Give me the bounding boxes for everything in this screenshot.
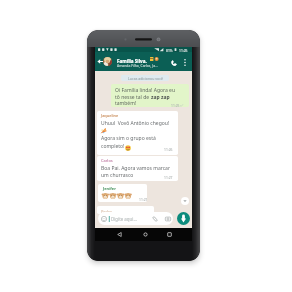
staticText: Jaqueline (101, 113, 119, 118)
staticText: 81% (166, 48, 173, 52)
staticText: um churrasco (101, 172, 134, 179)
button[interactable]: Jenifer (98, 184, 147, 202)
staticText: Boa Pai. Agora vamos marcar (101, 165, 170, 172)
button[interactable]: Back (95, 52, 105, 71)
staticText: Jenifer (103, 186, 116, 191)
staticText: zap zap (151, 94, 170, 101)
staticText: Lucas adicionou você (128, 76, 163, 81)
button[interactable]: Voice call (168, 53, 180, 72)
staticText: Oi Família linda! Agora eu (115, 87, 176, 94)
staticText: 11:25 (171, 103, 180, 107)
staticText: tô nesse tal de (115, 94, 151, 101)
button[interactable]: Group photo (103, 57, 112, 66)
button[interactable]: Back (113, 228, 125, 241)
staticText: Amanda Filha, Carlos, Ja... (117, 63, 158, 68)
button[interactable]: Oi Família linda! Agora eu (111, 84, 189, 107)
staticText: Agora sim o grupo está (101, 135, 156, 142)
staticText: 11:27 (164, 175, 173, 179)
button[interactable]: Jaqueline (97, 111, 178, 155)
button[interactable]: Carlos (97, 156, 178, 181)
staticText: Pedro (101, 209, 112, 214)
staticText: 11:27 (139, 197, 147, 201)
staticText: Carlos (101, 158, 113, 163)
staticText: também! (115, 100, 137, 107)
staticText: Uhuul Vovô Antônio chegou! (101, 120, 170, 127)
button[interactable]: Record voice message (177, 212, 190, 225)
staticText: 11:26 (164, 147, 173, 151)
staticText: Digite aqui... (111, 216, 137, 222)
button[interactable]: More options (180, 53, 189, 72)
button[interactable]: Recent apps (163, 228, 175, 241)
staticText: Família Silva. (117, 58, 147, 64)
button[interactable]: Scroll to bottom (181, 197, 189, 205)
button[interactable]: Home (139, 228, 151, 241)
staticText: completo! (101, 143, 125, 150)
button[interactable]: Digite aqui... (98, 212, 173, 225)
staticText: 11:25 (179, 48, 188, 52)
